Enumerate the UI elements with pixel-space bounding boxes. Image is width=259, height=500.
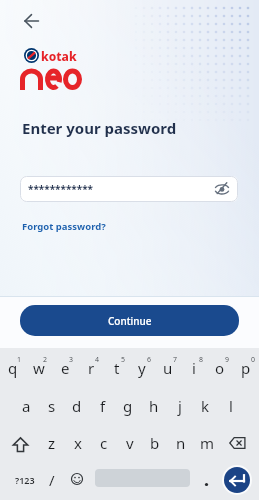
staticText: kotak: [41, 48, 77, 63]
staticText: ************: [28, 182, 94, 196]
staticText: x: [74, 433, 82, 453]
staticText: 9: [225, 355, 230, 365]
staticText: e: [61, 358, 70, 378]
staticText: h: [149, 396, 159, 416]
staticText: v: [126, 433, 134, 453]
staticText: a: [22, 396, 31, 416]
staticText: d: [72, 396, 82, 416]
staticText: r: [88, 358, 95, 378]
staticText: k: [201, 396, 210, 416]
staticText: ?123: [15, 474, 35, 486]
staticText: w: [33, 358, 45, 378]
staticText: 3: [69, 355, 74, 365]
staticText: m: [200, 433, 215, 453]
staticText: j: [178, 396, 182, 416]
staticText: g: [123, 396, 133, 416]
staticText: u: [163, 358, 173, 378]
staticText: o: [215, 358, 225, 378]
staticText: y: [138, 358, 146, 378]
staticText: /: [49, 470, 55, 490]
staticText: b: [150, 433, 160, 453]
staticText: 6: [147, 355, 152, 365]
staticText: s: [48, 396, 56, 416]
staticText: Forgot password?: [22, 220, 106, 233]
staticText: i: [192, 358, 196, 378]
staticText: Enter your password: [22, 118, 177, 138]
staticText: 1: [17, 355, 22, 365]
staticText: t: [114, 358, 120, 378]
staticText: n: [176, 433, 186, 453]
staticText: l: [229, 396, 233, 416]
staticText: 0: [251, 355, 256, 365]
staticText: 5: [121, 355, 126, 365]
staticText: 4: [95, 355, 100, 365]
staticText: 8: [199, 355, 204, 365]
staticText: 7: [173, 355, 178, 365]
staticText: p: [241, 358, 251, 378]
staticText: Continue: [108, 314, 152, 328]
staticText: c: [100, 433, 108, 453]
staticText: q: [8, 358, 18, 378]
staticText: 2: [43, 355, 48, 365]
staticText: f: [100, 396, 106, 416]
staticText: z: [48, 433, 56, 453]
